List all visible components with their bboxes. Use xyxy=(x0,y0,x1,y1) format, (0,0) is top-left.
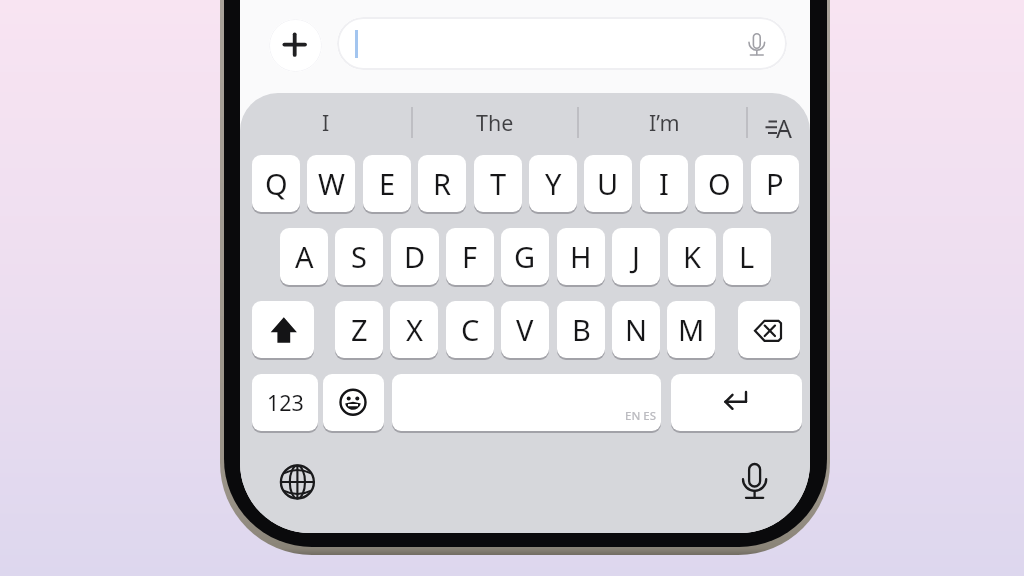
button[interactable] xyxy=(252,301,314,358)
staticText: F xyxy=(462,237,478,276)
staticText: A xyxy=(295,237,314,276)
staticText: Z xyxy=(351,310,368,349)
staticText: V xyxy=(516,310,534,349)
staticText: S xyxy=(351,237,367,276)
button[interactable] xyxy=(529,155,577,212)
button[interactable] xyxy=(323,374,384,431)
button[interactable] xyxy=(501,301,549,358)
button[interactable] xyxy=(501,228,549,285)
staticText: W xyxy=(318,164,345,203)
button[interactable] xyxy=(391,228,439,285)
staticText: The xyxy=(476,108,514,137)
staticText: P xyxy=(766,164,784,203)
staticText: N xyxy=(625,310,648,349)
staticText: H xyxy=(570,237,592,276)
button[interactable] xyxy=(557,301,605,358)
button[interactable] xyxy=(269,19,322,72)
button[interactable]: The xyxy=(425,103,565,141)
staticText: C xyxy=(461,310,480,349)
button[interactable]: A xyxy=(771,111,797,143)
button[interactable] xyxy=(738,301,800,358)
button[interactable] xyxy=(277,461,319,503)
staticText: R xyxy=(433,164,452,203)
staticText: 123 xyxy=(267,388,304,417)
staticText: G xyxy=(514,237,536,276)
button[interactable] xyxy=(667,301,715,358)
button[interactable] xyxy=(418,155,466,212)
staticText: I xyxy=(659,164,669,203)
button[interactable] xyxy=(695,155,743,212)
button[interactable] xyxy=(474,155,522,212)
staticText: Q xyxy=(265,164,288,203)
button[interactable] xyxy=(337,17,787,70)
staticText: A xyxy=(776,111,792,143)
button[interactable] xyxy=(723,228,771,285)
button[interactable] xyxy=(446,228,494,285)
staticText: Y xyxy=(545,164,562,203)
button[interactable] xyxy=(557,228,605,285)
button[interactable] xyxy=(335,301,383,358)
button[interactable] xyxy=(671,374,802,431)
staticText: M xyxy=(678,310,705,349)
staticText: B xyxy=(572,310,591,349)
button[interactable] xyxy=(640,155,688,212)
staticText: I’m xyxy=(649,108,680,137)
staticText: U xyxy=(597,164,619,203)
staticText: I xyxy=(322,108,330,137)
staticText: D xyxy=(404,237,426,276)
button[interactable] xyxy=(446,301,494,358)
button[interactable]: I’m xyxy=(594,103,734,141)
button[interactable] xyxy=(363,155,411,212)
button[interactable] xyxy=(335,228,383,285)
staticText: X xyxy=(406,310,423,349)
button[interactable] xyxy=(584,155,632,212)
button[interactable] xyxy=(733,461,775,503)
button[interactable] xyxy=(280,228,328,285)
staticText: K xyxy=(683,237,701,276)
button[interactable] xyxy=(252,374,318,431)
button[interactable] xyxy=(612,228,660,285)
button[interactable] xyxy=(392,374,661,431)
button[interactable] xyxy=(751,155,799,212)
staticText: J xyxy=(632,237,640,276)
button[interactable] xyxy=(612,301,660,358)
staticText: O xyxy=(708,164,731,203)
staticText: EN ES xyxy=(625,408,657,424)
button[interactable] xyxy=(390,301,438,358)
button[interactable] xyxy=(307,155,355,212)
staticText: L xyxy=(739,237,755,276)
staticText: T xyxy=(490,164,507,203)
button[interactable] xyxy=(252,155,300,212)
button[interactable]: I xyxy=(256,103,396,141)
button[interactable] xyxy=(668,228,716,285)
staticText: E xyxy=(379,164,396,203)
